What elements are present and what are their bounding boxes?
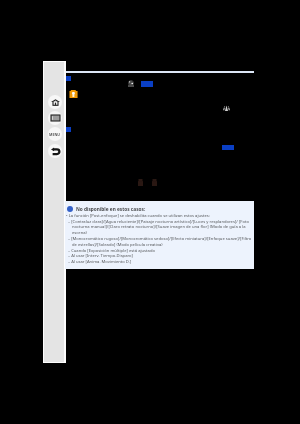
button[interactable]: Home [48, 95, 62, 109]
staticText: No disponible en estos casos: [76, 206, 146, 212]
staticText: nocturna manual]/[Claro retrato nocturno… [72, 224, 246, 230]
staticText: de estrellas]/[Soleado] (Modo película c… [72, 242, 163, 248]
button[interactable]: Back [48, 144, 62, 158]
staticText: – [Contraluz clara]/[Agua reluciente]/[P… [68, 219, 249, 225]
button[interactable]: Menu [48, 127, 62, 141]
staticText: – Al usar [Anima. Movimiento D.] [68, 259, 132, 265]
staticText: – [Monocromático rugoso]/[Monocromático … [68, 236, 252, 242]
staticText: escena) [72, 230, 87, 236]
staticText: – Al usar [Interv. Tiempo-Disparo] [68, 253, 133, 259]
button[interactable]: Display [48, 111, 62, 125]
staticText: MENU [49, 132, 61, 137]
staticText: • La función [Post-enfoque] se deshabili… [66, 213, 210, 219]
staticText: – Cuando [Exposición múltiple] está ajus… [68, 248, 155, 254]
